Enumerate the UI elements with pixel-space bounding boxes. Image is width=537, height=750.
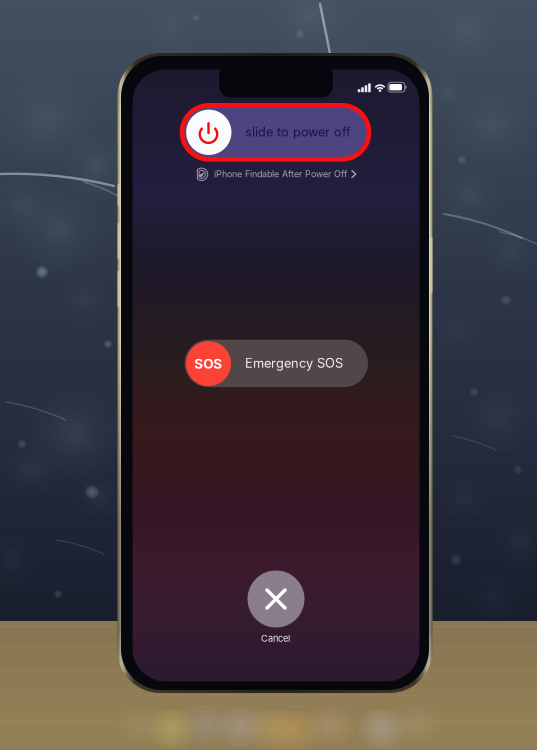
button[interactable]: iPhone Findable After Power Off bbox=[193, 168, 359, 182]
staticText: slide to power off bbox=[245, 124, 351, 139]
staticText: SOS bbox=[194, 356, 222, 372]
staticText: iPhone Findable After Power Off bbox=[214, 169, 347, 179]
staticText: Emergency SOS bbox=[245, 355, 343, 371]
button[interactable]: slide to power off bbox=[182, 105, 369, 159]
button[interactable]: Emergency SOS bbox=[184, 340, 368, 387]
staticText: Cancel bbox=[261, 633, 290, 644]
button[interactable]: Cancel bbox=[247, 570, 304, 627]
